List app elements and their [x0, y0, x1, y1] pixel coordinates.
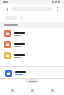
button[interactable]: Profile	[44, 86, 60, 95]
button[interactable]	[0, 66, 64, 79]
button[interactable]	[5, 16, 17, 20]
button[interactable]	[25, 79, 39, 83]
button[interactable]: Back	[4, 6, 10, 12]
button[interactable]: More options	[55, 7, 60, 12]
button[interactable]	[0, 39, 64, 50]
button[interactable]: Search	[24, 86, 40, 95]
button[interactable]	[0, 50, 64, 61]
button[interactable]: Home	[4, 86, 20, 95]
button[interactable]	[0, 28, 64, 39]
